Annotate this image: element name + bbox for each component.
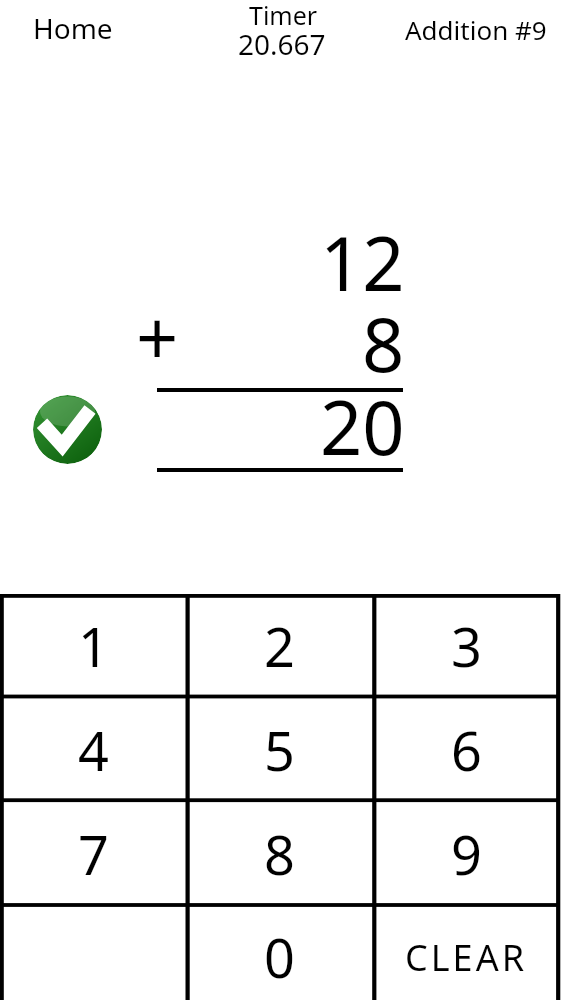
button[interactable]: CLEAR bbox=[373, 906, 560, 1000]
staticText: Addition #9 bbox=[405, 12, 547, 47]
button[interactable]: 5 bbox=[186, 698, 373, 802]
staticText: 0 bbox=[264, 920, 295, 994]
staticText: + bbox=[136, 286, 179, 387]
staticText: 20.667 bbox=[238, 25, 326, 63]
staticText: 5 bbox=[264, 713, 295, 787]
staticText: 3 bbox=[451, 609, 482, 683]
button[interactable]: 2 bbox=[186, 594, 373, 698]
button[interactable]: 0 bbox=[186, 906, 373, 1000]
staticText: 9 bbox=[451, 817, 482, 891]
staticText: 8 bbox=[264, 817, 295, 891]
button[interactable]: 6 bbox=[373, 698, 560, 802]
staticText: 1 bbox=[78, 609, 109, 683]
staticText: CLEAR bbox=[405, 933, 528, 982]
staticText: 6 bbox=[451, 713, 482, 787]
staticText: 7 bbox=[78, 817, 109, 891]
staticText: 20 bbox=[320, 376, 405, 477]
staticText: 2 bbox=[264, 609, 295, 683]
button[interactable]: 9 bbox=[373, 802, 560, 906]
button[interactable]: 4 bbox=[0, 698, 186, 802]
button[interactable]: 7 bbox=[0, 802, 186, 906]
button[interactable]: 1 bbox=[0, 594, 186, 698]
staticText: 8 bbox=[362, 293, 405, 394]
staticText: Home bbox=[33, 9, 113, 47]
staticText: 12 bbox=[320, 212, 405, 313]
staticText: Timer bbox=[249, 0, 318, 32]
button[interactable]: 8 bbox=[186, 802, 373, 906]
button[interactable]: Home bbox=[25, 1, 121, 55]
staticText: 4 bbox=[78, 713, 109, 787]
button[interactable]: 3 bbox=[373, 594, 560, 698]
